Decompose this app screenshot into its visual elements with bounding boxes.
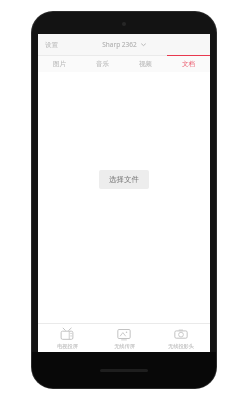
- button[interactable]: Wireless screen share: [96, 324, 152, 352]
- staticText: 视频: [139, 60, 152, 68]
- staticText: 图片: [53, 60, 66, 68]
- staticText: Sharp 2362: [102, 40, 137, 49]
- button[interactable]: 视频: [124, 56, 167, 72]
- staticText: 无线传屏: [114, 343, 135, 350]
- staticText: 设置: [45, 41, 58, 49]
- button[interactable]: 图片: [38, 56, 81, 72]
- staticText: 文档: [182, 60, 195, 68]
- button[interactable]: Sharp 2362: [96, 37, 153, 52]
- button[interactable]: 选择文件: [99, 170, 149, 189]
- staticText: 无线投影头: [168, 343, 194, 350]
- button[interactable]: 文档: [167, 56, 210, 72]
- staticText: 音乐: [96, 60, 109, 68]
- staticText: 电视投屏: [57, 343, 78, 350]
- button[interactable]: Wireless projector: [153, 324, 209, 352]
- button[interactable]: 音乐: [81, 56, 124, 72]
- staticText: 选择文件: [109, 175, 139, 184]
- button[interactable]: 设置: [38, 37, 65, 53]
- button[interactable]: TV cast: [39, 324, 95, 352]
